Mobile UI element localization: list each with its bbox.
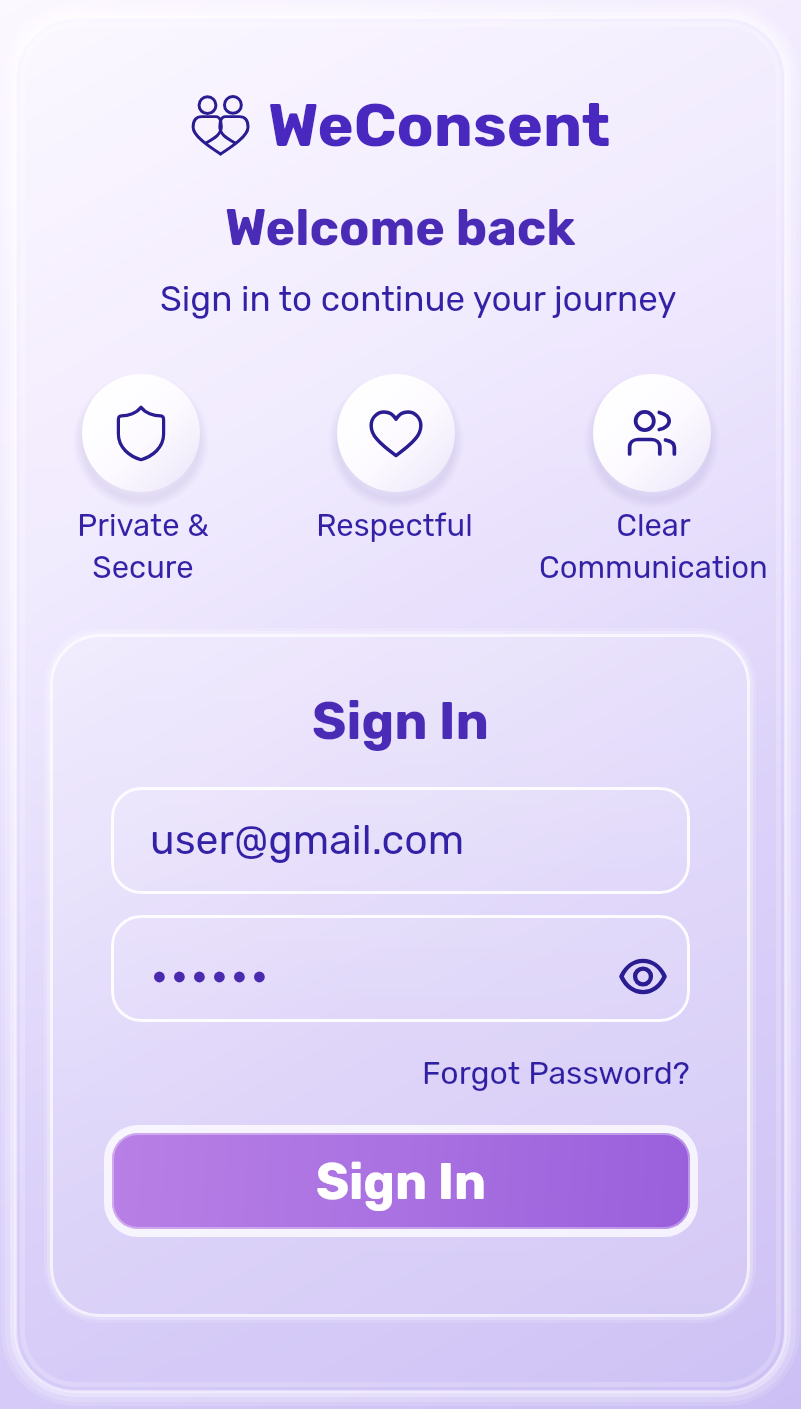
staticText: WeConsent [268,89,611,161]
button[interactable]: Clear Communication [503,507,801,586]
staticText: Welcome back [225,198,576,257]
button[interactable]: user@gmail.com [111,787,690,894]
button[interactable]: Private & Secure [0,507,293,586]
button[interactable] [73,365,209,501]
button[interactable]: Forgot Password? [422,1054,690,1092]
staticText: user@gmail.com [150,816,465,865]
button[interactable]: Show password [613,946,673,1006]
staticText: Sign in to continue your journey [160,278,677,319]
staticText: Respectful [316,507,473,544]
button[interactable]: Respectful [244,507,544,544]
button[interactable] [584,365,720,501]
staticText: Clear Communication [539,507,768,586]
button[interactable]: Sign In [312,690,489,752]
button[interactable]: Show password [111,915,690,1022]
button[interactable]: Sign In [112,1133,690,1229]
staticText: Sign In [316,1152,487,1211]
button[interactable] [328,365,464,501]
staticText: Private & Secure [77,507,209,586]
button[interactable]: WeConsent [0,89,801,161]
